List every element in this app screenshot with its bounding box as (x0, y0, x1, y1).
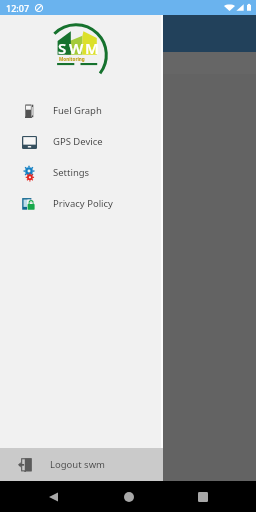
button[interactable]: Back (38, 481, 69, 512)
staticText: Settings (53, 166, 90, 179)
staticText: S (58, 38, 67, 58)
button[interactable]: Home (113, 481, 144, 512)
staticText: M (85, 38, 99, 58)
staticText: W (69, 38, 84, 58)
button[interactable]: Fuel Graph (0, 95, 163, 126)
staticText: Fuel Graph (53, 104, 102, 117)
staticText: Logout swm (50, 458, 105, 471)
staticText: GPS Device (53, 135, 103, 148)
staticText: Monitoring (59, 56, 85, 62)
staticText: 12:07 (6, 2, 30, 14)
button[interactable]: GPS Device (0, 126, 163, 157)
button[interactable]: Privacy Policy (0, 188, 163, 219)
staticText: Privacy Policy (53, 197, 113, 210)
button[interactable]: Recent apps (187, 481, 218, 512)
button[interactable]: Settings (0, 157, 163, 188)
button[interactable]: Logout swm (0, 448, 163, 481)
